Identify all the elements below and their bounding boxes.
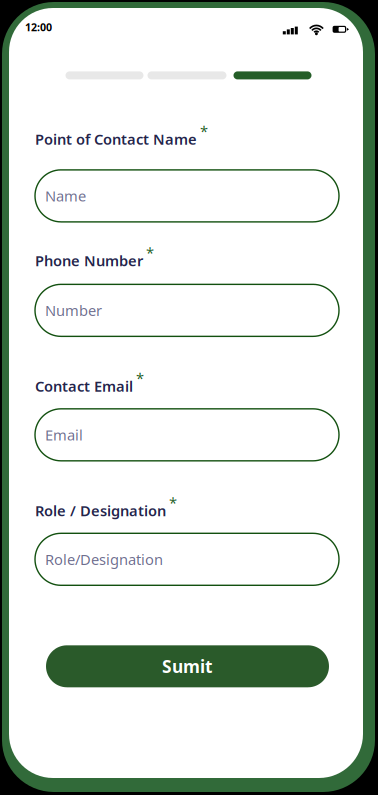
staticText: Contact Email xyxy=(35,376,133,396)
button[interactable]: Role/Designation xyxy=(35,533,339,585)
staticText: Email xyxy=(45,425,83,445)
staticText: * xyxy=(169,493,177,512)
staticText: * xyxy=(136,368,144,388)
staticText: Name xyxy=(45,186,86,206)
staticText: * xyxy=(200,121,208,141)
staticText: Point of Contact Name xyxy=(35,129,197,149)
staticText: Role / Designation xyxy=(35,501,166,520)
staticText: Role/Designation xyxy=(45,550,163,569)
button[interactable]: Name xyxy=(35,170,339,222)
staticText: Sumit xyxy=(162,655,213,678)
staticText: 12:00 xyxy=(25,20,52,34)
staticText: * xyxy=(146,243,154,262)
button[interactable]: Email xyxy=(35,409,339,461)
staticText: Phone Number xyxy=(35,251,143,270)
button[interactable]: Number xyxy=(35,284,339,336)
staticText: Number xyxy=(45,301,102,320)
button[interactable]: Sumit xyxy=(46,645,329,687)
